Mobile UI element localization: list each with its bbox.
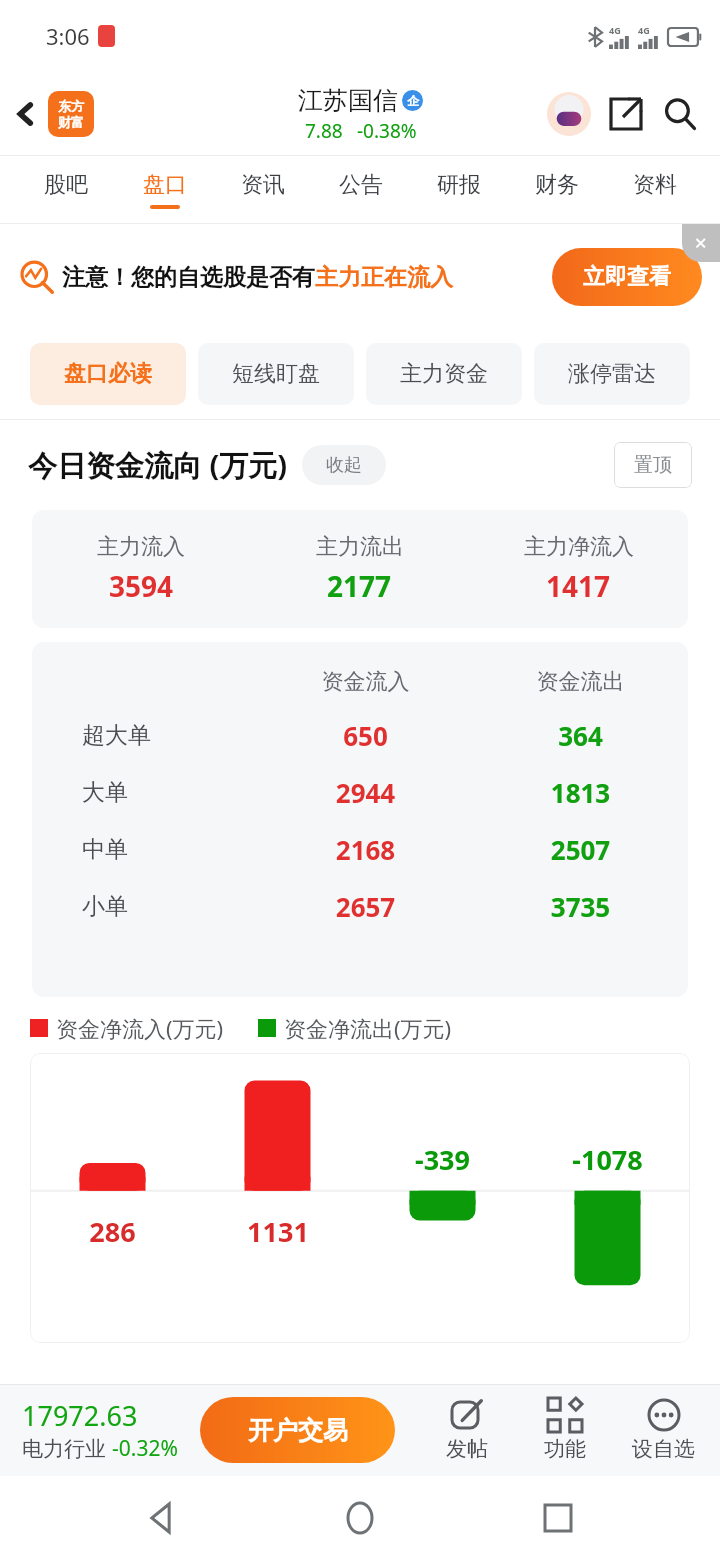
staticText: 公告 [339, 171, 383, 199]
button[interactable]: 涨停雷达 [534, 343, 690, 405]
button[interactable]: 公告 [312, 156, 410, 224]
staticText: 4G [609, 24, 621, 36]
staticText: 资金流入 [258, 668, 473, 696]
staticText: 盘口 [143, 171, 187, 199]
button[interactable]: 资料 [606, 156, 704, 224]
staticText: 主力净流入 [524, 533, 634, 561]
staticText: 开户交易 [248, 1415, 348, 1446]
button[interactable]: 开户交易 [200, 1397, 395, 1463]
button[interactable]: Recents [523, 1483, 593, 1553]
button[interactable]: 研报 [410, 156, 508, 224]
staticText: -1078 [572, 1141, 643, 1178]
button[interactable]: 立即查看 [552, 248, 702, 306]
staticText: 1417 [546, 567, 611, 605]
staticText: 650 [258, 718, 473, 753]
staticText: 小单 [82, 892, 128, 921]
staticText: 1131 [247, 1213, 309, 1250]
staticText: 股吧 [44, 171, 88, 199]
staticText: -0.32% [112, 1434, 178, 1463]
staticText: 286 [89, 1213, 136, 1250]
staticText: 发帖 [446, 1436, 488, 1462]
staticText: 收起 [326, 454, 362, 477]
staticText: 主力流入 [97, 533, 185, 561]
staticText: 主力正在流入 [315, 263, 453, 292]
staticText: 资金净流出(万元) [284, 1013, 452, 1043]
staticText: 17972.63 [22, 1397, 138, 1434]
staticText: 1813 [473, 775, 688, 810]
button[interactable]: Home [325, 1483, 395, 1553]
button[interactable]: Assistant [544, 89, 594, 139]
button[interactable]: 功能 [516, 1384, 614, 1476]
button[interactable]: 置顶 [614, 442, 692, 488]
staticText: 中单 [82, 835, 128, 864]
staticText: 3:06 [46, 21, 90, 51]
staticText: -0.38% [357, 118, 417, 144]
staticText: 资讯 [241, 171, 285, 199]
staticText: 2168 [258, 832, 473, 867]
button[interactable]: East Money [48, 91, 94, 137]
staticText: 资金流出 [473, 668, 688, 696]
button[interactable]: 17972.63 [22, 1397, 178, 1463]
staticText: 4G [638, 24, 650, 36]
staticText: 2944 [258, 775, 473, 810]
staticText: 3735 [473, 889, 688, 924]
button[interactable]: 收起 [302, 445, 386, 485]
staticText: 江苏国信 [298, 85, 398, 116]
staticText: 今日资金流向 (万元) [28, 445, 288, 485]
button[interactable]: 财务 [508, 156, 606, 224]
staticText: 364 [473, 718, 688, 753]
button[interactable]: 发帖 [418, 1384, 516, 1476]
staticText: 东方 [58, 98, 84, 114]
staticText: -339 [415, 1141, 470, 1178]
staticText: 大单 [82, 778, 128, 807]
staticText: 超大单 [82, 721, 151, 750]
staticText: 注意！您的自选股是否有 [62, 263, 315, 292]
staticText: 电力行业 [22, 1434, 112, 1463]
staticText: 主力资金 [400, 360, 488, 388]
button[interactable]: 设自选 [614, 1384, 712, 1476]
button[interactable]: 资讯 [214, 156, 312, 224]
staticText: ✕ [694, 234, 708, 253]
staticText: 2657 [258, 889, 473, 924]
staticText: 置顶 [634, 453, 672, 477]
button[interactable]: 盘口 [115, 156, 214, 224]
button[interactable]: 短线盯盘 [198, 343, 354, 405]
button[interactable]: Share [600, 88, 652, 140]
button[interactable]: Back [128, 1483, 198, 1553]
staticText: 涨停雷达 [568, 360, 656, 388]
staticText: 财富 [58, 114, 84, 130]
staticText: 2507 [473, 832, 688, 867]
staticText: 设自选 [632, 1436, 695, 1462]
button[interactable]: Back [0, 88, 52, 140]
staticText: 财务 [535, 171, 579, 199]
staticText: 短线盯盘 [232, 360, 320, 388]
button[interactable]: Close [682, 224, 720, 262]
button[interactable]: 盘口必读 [30, 343, 186, 405]
staticText: 2177 [327, 567, 392, 605]
staticText: 资金净流入(万元) [56, 1013, 224, 1043]
button[interactable]: 主力资金 [366, 343, 522, 405]
staticText: 研报 [437, 171, 481, 199]
staticText: 资料 [633, 171, 677, 199]
staticText: 7.88 [305, 118, 343, 144]
staticText: 3594 [109, 567, 174, 605]
staticText: 主力流出 [316, 533, 404, 561]
button[interactable]: 股吧 [16, 156, 115, 224]
staticText: 企 [407, 93, 419, 108]
staticText: 立即查看 [583, 263, 671, 291]
staticText: 盘口必读 [64, 360, 152, 388]
button[interactable]: Search [654, 88, 706, 140]
staticText: 功能 [544, 1436, 586, 1462]
